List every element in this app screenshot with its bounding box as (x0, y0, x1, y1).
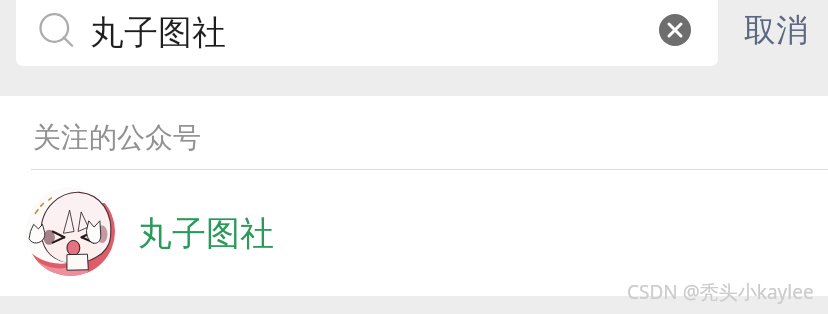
staticText: 丸子图社 (138, 212, 274, 255)
button[interactable]: Search (16, 0, 718, 66)
staticText: 丸子图社 (90, 11, 226, 54)
button[interactable]: 取消 (727, 0, 825, 60)
button[interactable]: Clear search text (659, 14, 691, 46)
button[interactable]: 丸子图社 (0, 169, 828, 294)
staticText: 关注的公众号 (33, 120, 201, 155)
staticText: 取消 (744, 10, 808, 50)
staticText: CSDN @秃头小kaylee (627, 279, 814, 305)
other: Search (38, 11, 72, 45)
